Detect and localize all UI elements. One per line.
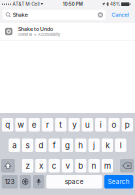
staticText: h (78, 140, 83, 150)
staticText: x (39, 161, 43, 171)
button[interactable] (120, 159, 134, 172)
button[interactable]: y (68, 118, 80, 131)
button[interactable]: q (2, 118, 13, 131)
button[interactable]: f (49, 138, 60, 152)
staticText: d (38, 140, 43, 150)
button[interactable]: r (42, 118, 53, 131)
button[interactable]: d (35, 138, 47, 152)
staticText: q (5, 120, 10, 130)
button[interactable]: n (88, 159, 100, 172)
staticText: t (59, 120, 62, 130)
staticText: w (17, 120, 24, 130)
staticText: z (26, 161, 30, 171)
button[interactable]: k (102, 138, 113, 152)
staticText: Search (108, 178, 130, 186)
staticText: General → Accessibility (18, 32, 60, 37)
button[interactable]: j (88, 138, 100, 152)
staticText: v (65, 161, 69, 171)
button[interactable]: t (55, 118, 66, 131)
staticText: a (12, 140, 16, 150)
button[interactable]: 123 (2, 175, 18, 188)
button[interactable]: space (46, 175, 102, 188)
staticText: e (32, 120, 37, 130)
staticText: AT&T M-Cell (12, 1, 39, 7)
button[interactable]: i (95, 118, 106, 131)
button[interactable]: l (115, 138, 126, 152)
button[interactable] (1, 159, 15, 172)
button[interactable]: g (62, 138, 73, 152)
button[interactable]: c (48, 159, 60, 172)
staticText: m (104, 161, 111, 171)
button[interactable]: h (75, 138, 86, 152)
button[interactable] (33, 175, 44, 188)
button[interactable]: m (102, 159, 113, 172)
staticText: 10:50 PM (63, 1, 83, 7)
staticText: r (46, 120, 49, 130)
button[interactable]: p (122, 118, 133, 131)
button[interactable]: z (22, 159, 33, 172)
staticText: u (85, 120, 90, 130)
staticText: space (65, 178, 84, 186)
staticText: Shake to Undo (18, 26, 53, 32)
staticText: p (125, 120, 130, 130)
staticText: 48% (110, 1, 120, 7)
button[interactable]: v (62, 159, 73, 172)
button[interactable]: b (75, 159, 86, 172)
button[interactable]: a (9, 138, 20, 152)
staticText: y (72, 120, 76, 130)
staticText: k (105, 140, 109, 150)
staticText: c (52, 161, 57, 171)
button[interactable] (20, 175, 31, 188)
staticText: o (111, 120, 116, 130)
staticText: Shake (13, 12, 28, 18)
button[interactable]: e (29, 118, 40, 131)
staticText: i (100, 120, 102, 130)
staticText: 123 (5, 178, 15, 185)
staticText: f (53, 140, 56, 150)
staticText: n (92, 161, 97, 171)
staticText: Cancel (111, 12, 128, 18)
button[interactable]: Cancel (105, 8, 134, 22)
button[interactable]: w (15, 118, 27, 131)
staticText: b (78, 161, 83, 171)
staticText: j (93, 140, 95, 150)
button[interactable]: Shake to Undo (0, 23, 135, 40)
staticText: s (26, 140, 30, 150)
staticText: l (120, 140, 122, 150)
button[interactable]: u (82, 118, 93, 131)
button[interactable]: o (108, 118, 120, 131)
button[interactable]: Search (104, 175, 133, 188)
button[interactable]: s (22, 138, 33, 152)
button[interactable]: x (35, 159, 46, 172)
staticText: g (65, 140, 70, 150)
